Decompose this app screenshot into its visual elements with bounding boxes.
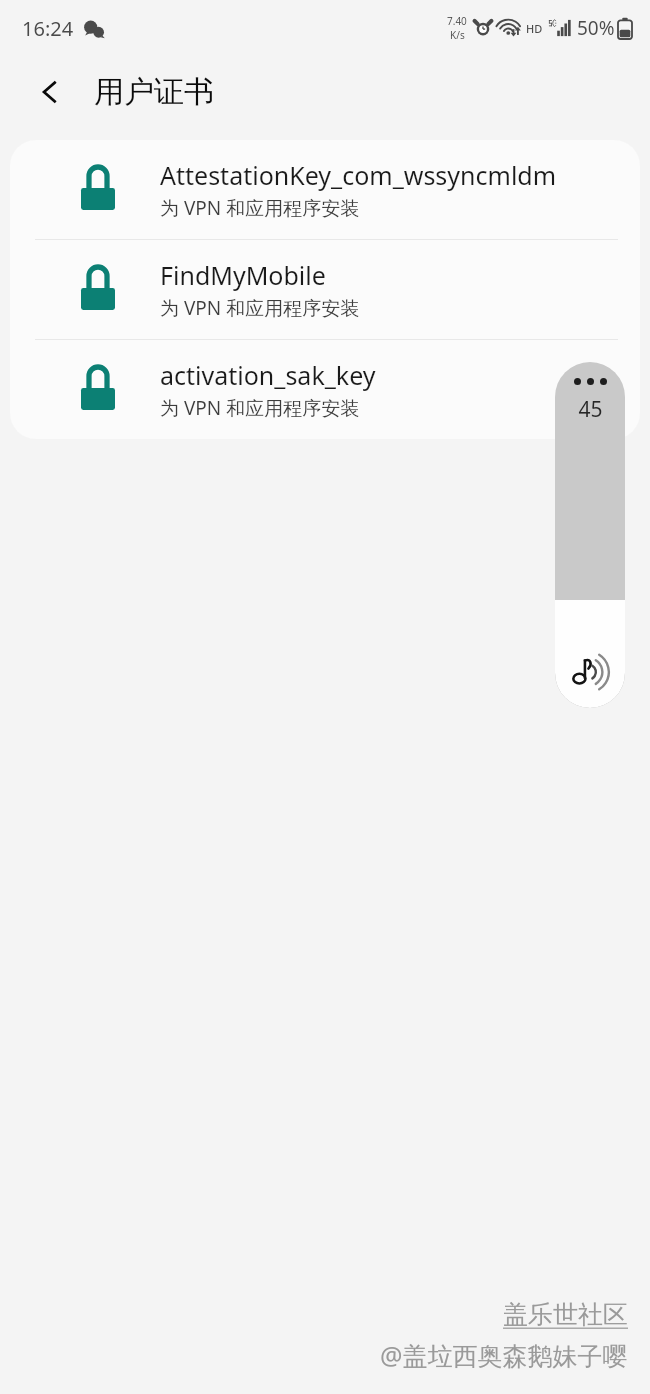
staticText: AttestationKey_com_wssyncmldm [160,158,557,192]
staticText: 7.40 [447,14,467,28]
staticText: FindMyMobile [160,258,326,292]
staticText: 16:24 [22,15,74,42]
staticText: 盖乐世社区 [503,1299,628,1330]
button[interactable]: FindMyMobile [10,240,640,339]
button[interactable]: activation_sak_key [10,340,640,439]
staticText: 为 VPN 和应用程序安装 [160,395,360,421]
button[interactable]: AttestationKey_com_wssyncmldm [10,140,640,239]
staticText: activation_sak_key [160,358,376,392]
staticText: 为 VPN 和应用程序安装 [160,195,360,221]
staticText: HD [526,21,543,36]
staticText: 50% [577,15,615,41]
staticText: @盖垃西奥森鹅妹子嘤 [380,1338,628,1372]
staticText: 用户证书 [94,73,214,111]
button[interactable]: Volume [555,362,625,708]
button[interactable]: Back [26,68,74,116]
staticText: K/s [450,28,465,42]
staticText: 为 VPN 和应用程序安装 [160,295,360,321]
staticText: 45 [578,395,603,424]
